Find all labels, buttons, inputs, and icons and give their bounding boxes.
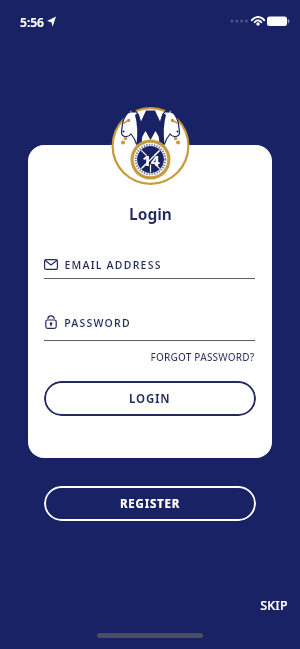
staticText: 5:56 bbox=[20, 14, 44, 30]
button[interactable] bbox=[40, 252, 256, 282]
button[interactable]: REGISTER bbox=[44, 486, 256, 521]
staticText: SKIP bbox=[260, 597, 288, 614]
staticText: EMAIL ADDRESS bbox=[64, 258, 162, 272]
button[interactable] bbox=[40, 310, 256, 342]
button[interactable]: SKIP bbox=[240, 595, 288, 615]
button[interactable]: LOGIN bbox=[44, 381, 256, 416]
staticText: LOGIN bbox=[129, 391, 171, 407]
staticText: REGISTER bbox=[120, 496, 181, 512]
staticText: 14 bbox=[142, 150, 160, 169]
staticText: PASSWORD bbox=[64, 316, 131, 330]
button[interactable]: FORGOT PASSWORD? bbox=[135, 350, 255, 364]
staticText: Login bbox=[129, 203, 172, 224]
staticText: FORGOT PASSWORD? bbox=[150, 350, 255, 364]
